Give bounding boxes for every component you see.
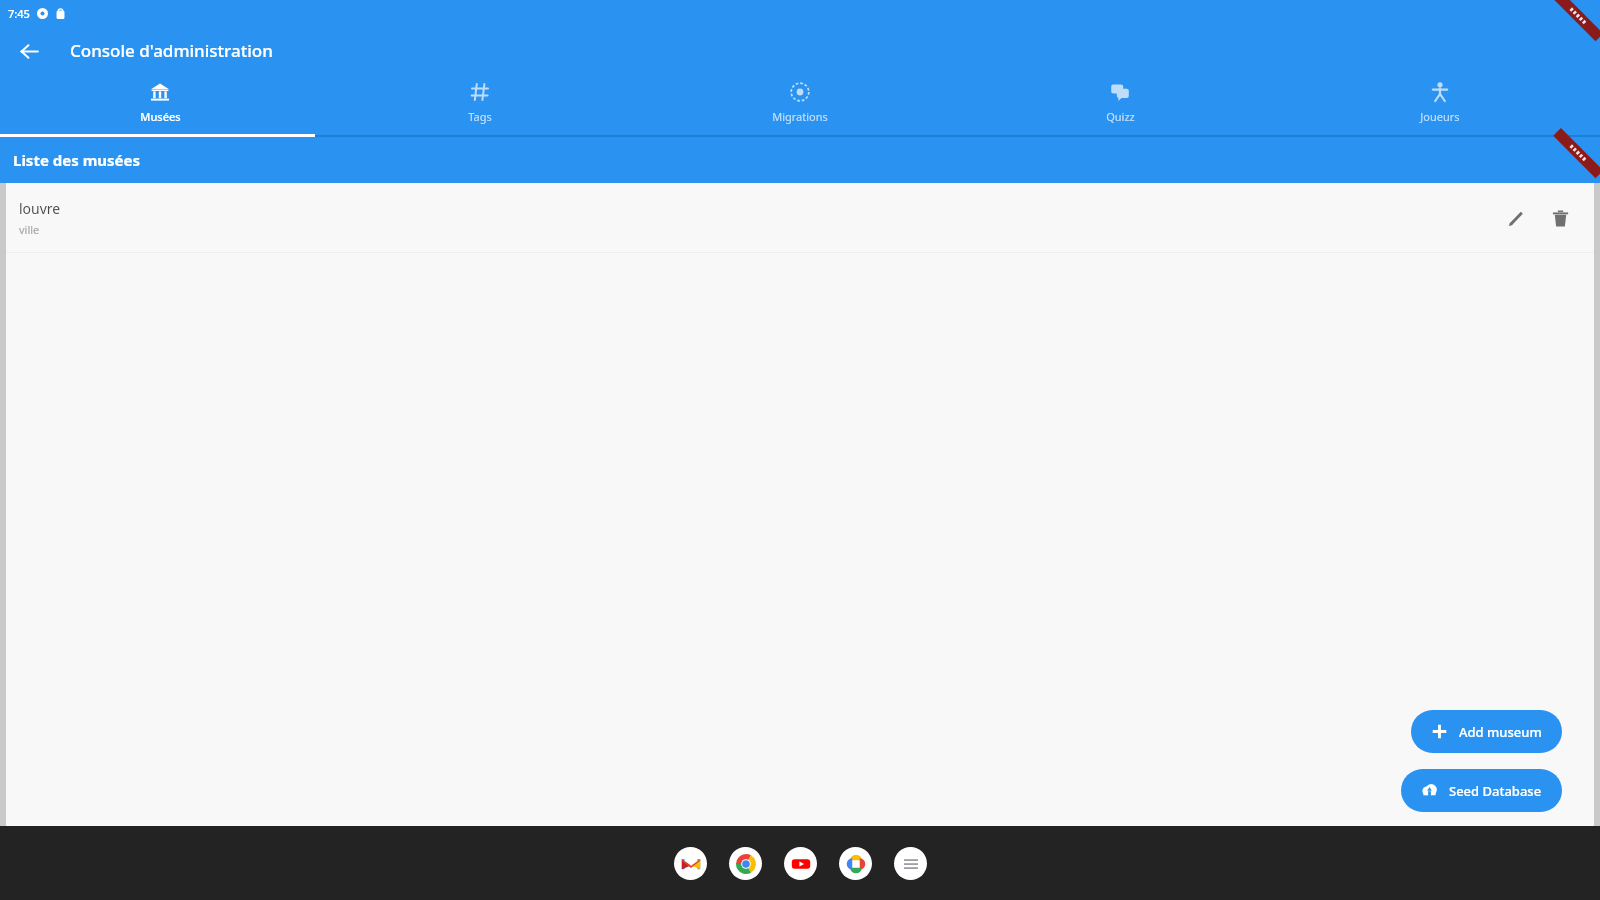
button[interactable]: Gmail <box>674 847 707 880</box>
button[interactable]: Back <box>8 30 50 72</box>
button[interactable]: Joueurs <box>1280 75 1600 137</box>
button[interactable]: Quizz <box>960 75 1280 137</box>
staticText: Quizz <box>1106 109 1135 124</box>
button[interactable]: YouTube <box>784 847 817 880</box>
staticText: Seed Database <box>1449 782 1542 800</box>
staticText: Liste des musées <box>13 150 140 170</box>
staticText: louvre <box>19 199 61 218</box>
staticText: ville <box>19 222 40 237</box>
button[interactable]: louvre <box>6 183 1594 253</box>
button[interactable]: All apps <box>894 847 927 880</box>
button[interactable]: Tags <box>320 75 640 137</box>
staticText: 7:45 <box>8 6 30 21</box>
staticText: Console d'administration <box>70 39 273 62</box>
button[interactable]: Edit <box>1496 198 1536 238</box>
staticText: Migrations <box>772 109 828 124</box>
button[interactable]: Add museum <box>1411 710 1562 753</box>
staticText: Musées <box>140 109 181 124</box>
button[interactable]: Delete <box>1540 198 1580 238</box>
button[interactable]: Musées <box>0 75 320 137</box>
staticText: Joueurs <box>1420 109 1460 124</box>
button[interactable]: Migrations <box>640 75 960 137</box>
staticText: Add museum <box>1459 723 1542 741</box>
button[interactable]: Seed Database <box>1401 769 1562 812</box>
button[interactable]: Google Photos <box>839 847 872 880</box>
staticText: Tags <box>468 109 492 124</box>
button[interactable]: Chrome <box>729 847 762 880</box>
